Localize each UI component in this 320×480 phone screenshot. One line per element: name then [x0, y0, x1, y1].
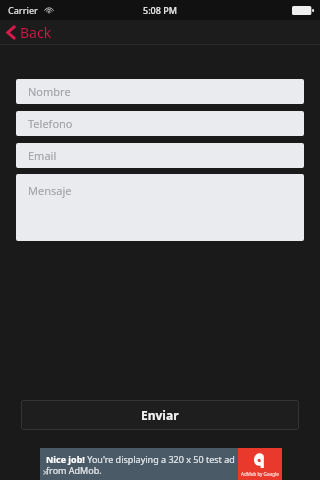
- staticText: 5:08 PM: [143, 4, 177, 16]
- button[interactable]: Mensaje: [16, 174, 304, 241]
- button[interactable]: Nice job! You're displaying a 320 x 50 t…: [40, 448, 282, 480]
- staticText: Enviar: [141, 407, 179, 423]
- button[interactable]: Back: [0, 21, 62, 44]
- button[interactable]: Telefono: [16, 111, 304, 136]
- button[interactable]: Email: [16, 143, 304, 168]
- staticText: Telefono: [28, 116, 73, 131]
- staticText: Nice job! You're displaying a 320 x 50 t…: [46, 453, 235, 476]
- staticText: Back: [20, 23, 52, 42]
- staticText: AdMob by Google: [241, 471, 279, 477]
- staticText: Mensaje: [28, 183, 72, 198]
- staticText: Email: [28, 148, 57, 163]
- other: Close ad: [42, 469, 49, 476]
- button[interactable]: Enviar: [21, 400, 299, 430]
- staticText: Nombre: [28, 84, 71, 99]
- staticText: Carrier: [8, 4, 38, 16]
- button[interactable]: Nombre: [16, 79, 304, 104]
